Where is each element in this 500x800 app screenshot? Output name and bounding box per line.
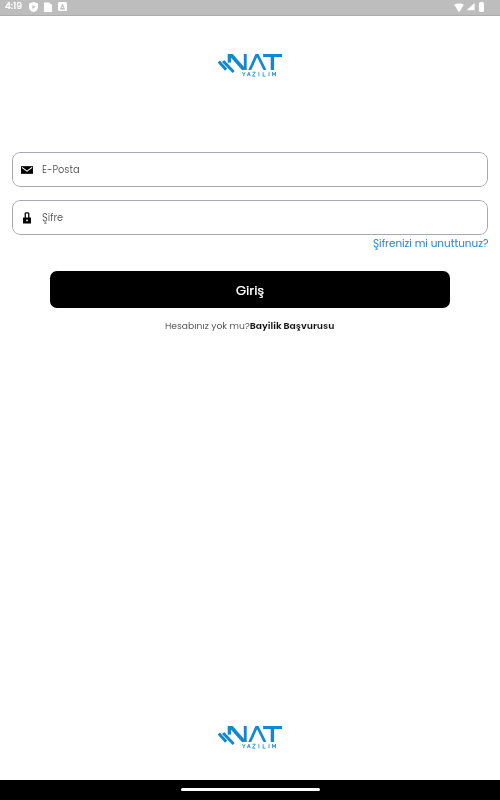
button[interactable]: Şifre xyxy=(12,200,488,235)
staticText: Şifre xyxy=(42,211,64,225)
staticText: Hesabınız yok mu?Bayilik Başvurusu xyxy=(165,319,335,332)
button[interactable]: Şifrenizi mi unuttunuz? xyxy=(373,236,489,251)
button[interactable]: Giriş xyxy=(50,271,450,308)
staticText: E-Posta xyxy=(42,163,80,177)
staticText: Giriş xyxy=(236,281,265,299)
staticText: 4:19 xyxy=(5,0,22,13)
button[interactable]: Hesabınız yok mu?Bayilik Başvurusu xyxy=(165,319,335,332)
staticText: Şifrenizi mi unuttunuz? xyxy=(373,236,489,251)
button[interactable]: E-Posta xyxy=(12,152,488,187)
